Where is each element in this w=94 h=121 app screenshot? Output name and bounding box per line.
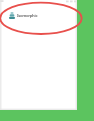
staticText: Isomorphic	[17, 13, 38, 19]
button[interactable]: Isomorphic logo	[9, 12, 38, 19]
other: Isomorphic logo	[9, 12, 15, 19]
